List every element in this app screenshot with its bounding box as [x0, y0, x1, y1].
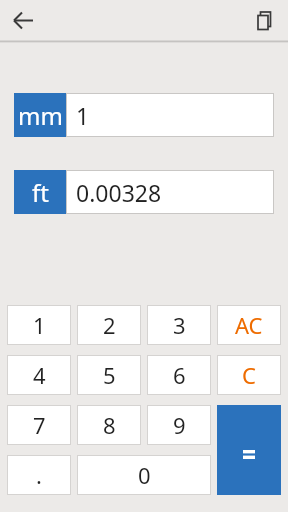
button[interactable]: 5 [77, 355, 141, 395]
staticText: 1 [33, 310, 46, 340]
button[interactable]: 4 [7, 355, 71, 395]
staticText: AC [235, 310, 263, 340]
button[interactable]: 1 [7, 305, 71, 345]
staticText: 9 [173, 410, 186, 440]
button[interactable]: 8 [77, 405, 141, 445]
staticText: 2 [103, 310, 116, 340]
staticText: . [36, 460, 42, 490]
button[interactable]: 3 [147, 305, 211, 345]
staticText: 8 [103, 410, 116, 440]
button[interactable] [217, 405, 281, 495]
button[interactable] [250, 4, 282, 36]
button[interactable]: 7 [7, 405, 71, 445]
button[interactable]: 0.00328 [66, 170, 274, 214]
staticText: C [242, 360, 256, 390]
staticText: ft [32, 176, 49, 209]
button[interactable]: AC [217, 305, 281, 345]
button[interactable]: C [217, 355, 281, 395]
staticText: 5 [103, 360, 116, 390]
staticText: 0 [138, 460, 151, 490]
staticText: 7 [33, 410, 46, 440]
button[interactable]: 9 [147, 405, 211, 445]
staticText: mm [18, 99, 63, 132]
button[interactable]: ft [14, 170, 66, 214]
staticText: 1 [76, 100, 90, 131]
button[interactable]: 0 [77, 455, 211, 495]
button[interactable]: 6 [147, 355, 211, 395]
button[interactable] [6, 2, 42, 38]
button[interactable]: 1 [66, 93, 274, 137]
staticText: 6 [173, 360, 186, 390]
staticText: 4 [33, 360, 46, 390]
staticText: 0.00328 [76, 177, 162, 208]
staticText: 3 [173, 310, 186, 340]
button[interactable]: mm [14, 93, 66, 137]
button[interactable]: . [7, 455, 71, 495]
button[interactable]: 2 [77, 305, 141, 345]
